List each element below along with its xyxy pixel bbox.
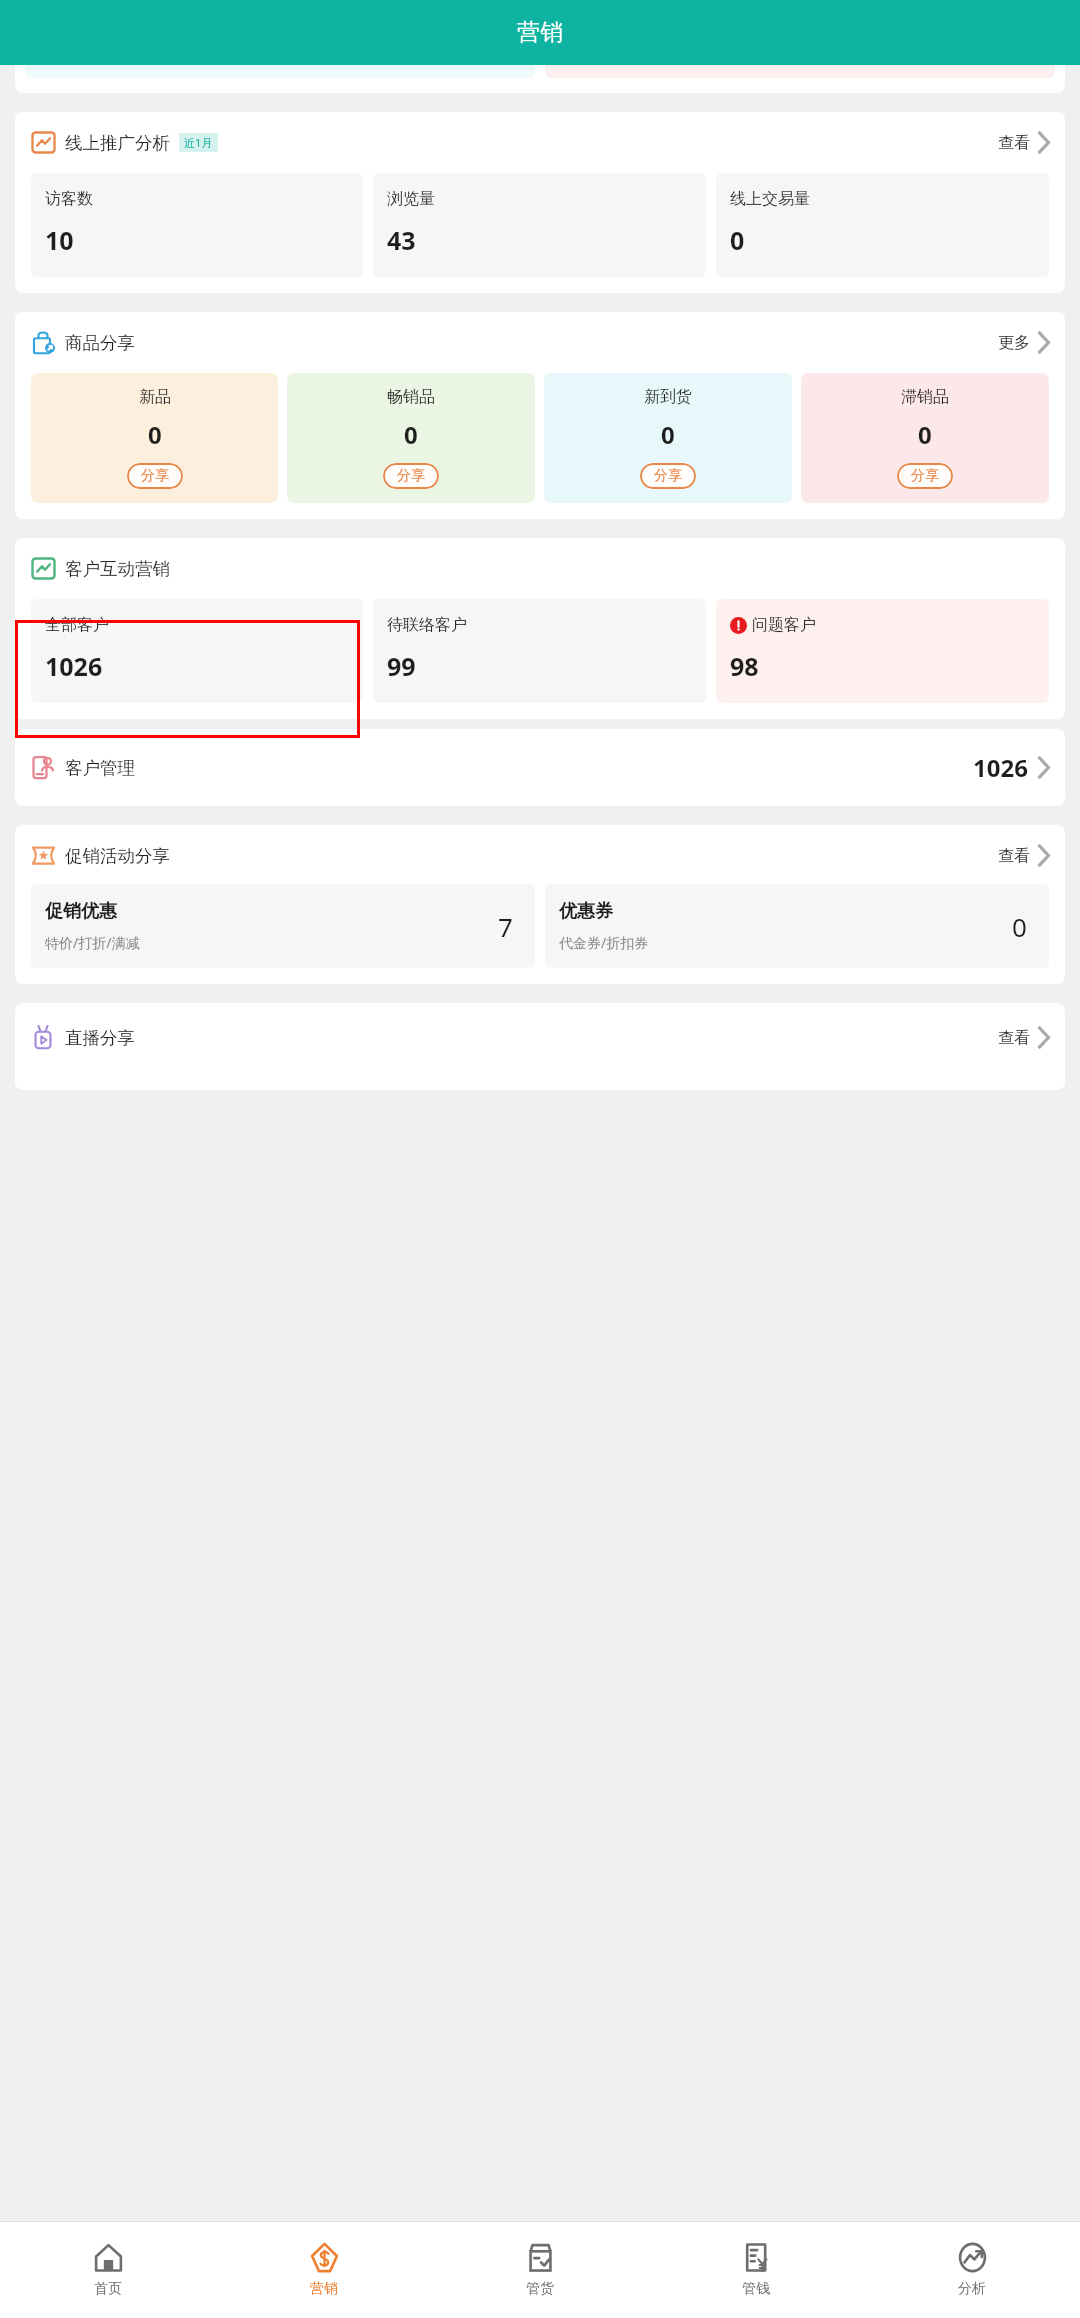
button[interactable]: 线上推广分析	[31, 130, 1049, 155]
staticText: 管货	[526, 2280, 554, 2298]
staticText: 0	[730, 223, 745, 257]
staticText: 查看	[998, 1028, 1030, 1048]
staticText: 访客数	[45, 189, 93, 209]
button[interactable]: 营销	[216, 2222, 432, 2318]
staticText: 代金券/折扣券	[559, 933, 649, 952]
button[interactable]: 客户互动营销	[31, 556, 1049, 581]
staticText: 分析	[958, 2280, 986, 2298]
staticText: 商品分享	[65, 332, 135, 354]
staticText: 1026	[973, 751, 1028, 784]
staticText: 0	[918, 418, 932, 451]
button[interactable]: 线上交易量	[716, 173, 1049, 277]
staticText: 全部客户	[45, 615, 109, 635]
button[interactable]: 问题客户	[716, 599, 1049, 703]
button[interactable]: 优惠券	[545, 884, 1049, 968]
button[interactable]: 分享	[897, 463, 953, 489]
staticText: 7	[498, 909, 513, 944]
staticText: 分享	[654, 467, 682, 485]
staticText: 1026	[45, 649, 103, 683]
staticText: 客户互动营销	[65, 558, 170, 580]
staticText: 99	[387, 649, 416, 683]
staticText: 10	[45, 223, 74, 257]
staticText: 更多	[998, 333, 1030, 353]
staticText: 线上交易量	[730, 189, 810, 209]
button[interactable]: 待联络客户	[373, 599, 706, 703]
button[interactable]: 促销优惠	[31, 884, 535, 968]
button[interactable]: 分析	[864, 2222, 1080, 2318]
staticText: 查看	[998, 846, 1030, 866]
staticText: 促销优惠	[45, 900, 117, 923]
staticText: 促销活动分享	[65, 845, 170, 867]
staticText: 客户管理	[65, 757, 135, 779]
staticText: 0	[661, 418, 675, 451]
staticText: 查看	[998, 133, 1030, 153]
button[interactable]: 商品分享	[31, 330, 1049, 355]
button[interactable]: 全部客户	[31, 599, 363, 703]
button[interactable]: 促销活动分享	[31, 843, 1049, 868]
staticText: 43	[387, 223, 416, 257]
staticText: 分享	[911, 467, 939, 485]
button[interactable]: 浏览量	[373, 173, 706, 277]
staticText: 直播分享	[65, 1027, 135, 1049]
staticText: 线上推广分析	[65, 132, 170, 154]
staticText: 分享	[141, 467, 169, 485]
button[interactable]: 滞销品	[801, 373, 1049, 503]
staticText: 管钱	[742, 2280, 770, 2298]
button[interactable]: 分享	[383, 463, 439, 489]
button[interactable]: 分享	[127, 463, 183, 489]
staticText: 分享	[397, 467, 425, 485]
staticText: 畅销品	[387, 387, 435, 407]
button[interactable]: 分享	[640, 463, 696, 489]
staticText: 0	[148, 418, 162, 451]
button[interactable]: 客户管理	[15, 729, 1065, 806]
button[interactable]: 管钱	[648, 2222, 864, 2318]
staticText: 问题客户	[752, 615, 816, 635]
staticText: 特价/打折/满减	[45, 933, 140, 952]
staticText: 0	[404, 418, 418, 451]
staticText: 98	[730, 649, 759, 683]
button[interactable]: 新品	[31, 373, 278, 503]
staticText: 0	[1012, 909, 1027, 944]
button[interactable]: 首页	[0, 2222, 216, 2318]
button[interactable]: 新到货	[544, 373, 792, 503]
staticText: 新到货	[644, 387, 692, 407]
staticText: 优惠券	[559, 900, 613, 923]
staticText: 首页	[94, 2280, 122, 2298]
staticText: 浏览量	[387, 189, 435, 209]
button[interactable]: 管货	[432, 2222, 648, 2318]
staticText: 营销	[310, 2280, 338, 2298]
button[interactable]: 直播分享	[15, 1003, 1065, 1090]
staticText: 近1月	[184, 135, 213, 150]
button[interactable]	[15, 65, 1065, 93]
staticText: 新品	[139, 387, 171, 407]
staticText: 滞销品	[901, 387, 949, 407]
button[interactable]: 畅销品	[287, 373, 535, 503]
staticText: 营销	[517, 18, 563, 47]
staticText: 待联络客户	[387, 615, 467, 635]
button[interactable]: 访客数	[31, 173, 363, 277]
